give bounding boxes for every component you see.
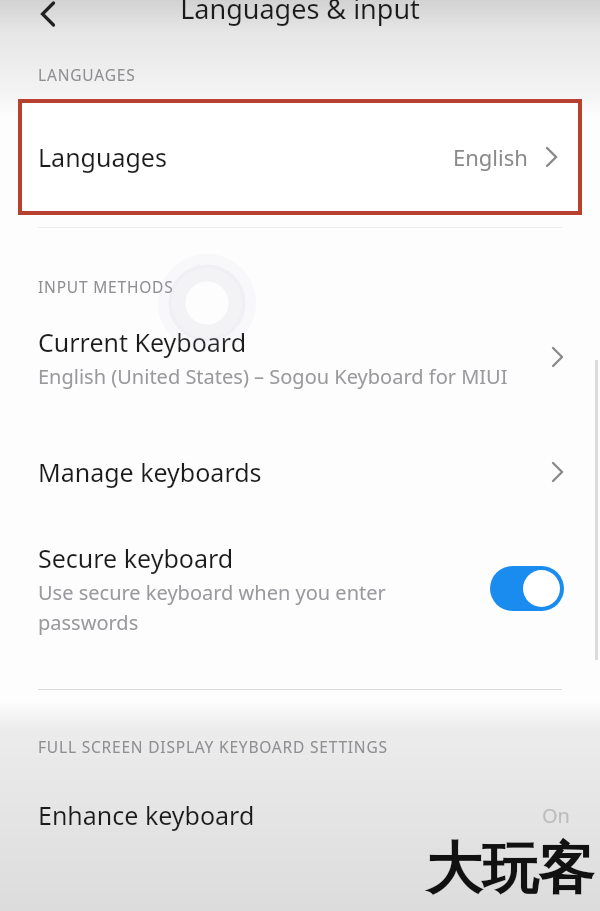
staticText: Enhance keyboard — [38, 798, 255, 832]
staticText: Use secure keyboard when you enter passw… — [38, 579, 480, 636]
button[interactable]: Languages — [20, 101, 580, 213]
button[interactable]: Secure keyboard toggle, on — [490, 566, 564, 611]
staticText: FULL SCREEN DISPLAY KEYBOARD SETTINGS — [38, 736, 388, 757]
staticText: Current Keyboard — [38, 325, 247, 359]
staticText: On — [542, 802, 570, 829]
staticText: LANGUAGES — [38, 64, 136, 85]
staticText: Secure keyboard — [38, 541, 234, 575]
button[interactable]: Secure keyboard — [0, 529, 600, 647]
button[interactable]: Manage keyboards — [0, 441, 600, 503]
staticText: Languages — [38, 140, 167, 174]
staticText: English (United States) – Sogou Keyboard… — [38, 363, 508, 390]
button[interactable]: Back — [26, 0, 70, 36]
button[interactable]: Current Keyboard — [0, 297, 600, 417]
staticText: 大玩客 — [426, 834, 594, 905]
staticText: Languages & input — [0, 0, 600, 27]
staticText: INPUT METHODS — [38, 276, 174, 297]
button[interactable]: Enhance keyboard — [0, 785, 600, 845]
staticText: English — [453, 142, 528, 172]
staticText: Manage keyboards — [38, 455, 262, 489]
